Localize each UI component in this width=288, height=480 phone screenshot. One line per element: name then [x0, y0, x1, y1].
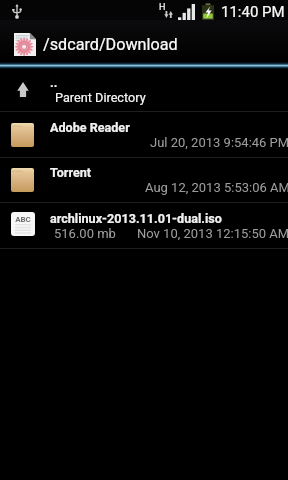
staticText: /sdcard/Download — [43, 35, 178, 54]
staticText: Adobe Reader — [50, 120, 130, 135]
other: USB connected — [12, 4, 22, 19]
staticText: H — [159, 2, 166, 13]
button[interactable]: /sdcard/Download — [0, 20, 288, 62]
button[interactable]: Torrent — [0, 158, 288, 202]
staticText: Aug 12, 2013 5:53:06 AM — [145, 180, 288, 195]
button[interactable]: ABC — [0, 203, 288, 248]
button[interactable]: .. — [0, 69, 288, 111]
staticText: archlinux-2013.11.01-dual.iso — [50, 211, 222, 226]
staticText: Jul 20, 2013 9:54:46 PM — [150, 135, 288, 150]
button[interactable]: Adobe Reader — [0, 112, 288, 157]
staticText: Torrent — [50, 165, 92, 180]
staticText: .. — [50, 75, 58, 90]
staticText: 516.00 mb — [54, 226, 116, 241]
staticText: 11:40 PM — [221, 3, 285, 21]
staticText: Parent Directory — [55, 90, 146, 105]
staticText: ABC — [11, 215, 35, 224]
staticText: Nov 10, 2013 12:15:50 AM — [137, 226, 288, 241]
